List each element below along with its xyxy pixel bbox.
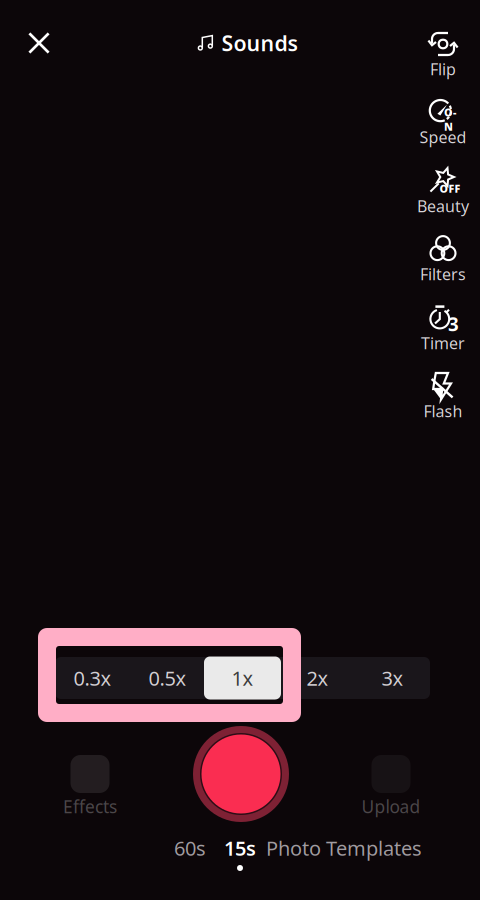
button[interactable]: 1x [205, 656, 280, 699]
button[interactable]: Flip [411, 29, 475, 77]
staticText: OFF [439, 181, 460, 196]
staticText: 3x [381, 665, 403, 691]
button[interactable]: ON [411, 97, 475, 145]
button[interactable]: Record [193, 726, 289, 822]
button[interactable]: 15s [214, 834, 266, 862]
staticText: Timer [421, 332, 465, 354]
staticText: Photo Templates [266, 835, 422, 861]
button[interactable]: Photo Templates [266, 834, 464, 862]
button[interactable]: Effects [48, 755, 132, 815]
staticText: Sounds [221, 29, 298, 57]
button[interactable]: 3x [355, 656, 430, 699]
button[interactable]: OFF [411, 166, 475, 214]
staticText: 1x [231, 665, 253, 691]
button[interactable]: 0.3x [55, 656, 130, 699]
button[interactable]: Close [16, 20, 62, 66]
button[interactable]: 3 [411, 303, 475, 351]
button[interactable]: Flash [411, 371, 475, 419]
button[interactable]: Upload [349, 755, 433, 815]
staticText: 60s [174, 835, 206, 861]
staticText: Filters [420, 263, 466, 285]
staticText: 15s [224, 835, 256, 861]
staticText: 3 [448, 312, 459, 336]
button[interactable]: 0.5x [130, 656, 205, 699]
staticText: Speed [419, 126, 466, 148]
button[interactable]: Filters [411, 234, 475, 282]
staticText: Upload [361, 795, 420, 818]
staticText: Beauty [417, 195, 469, 217]
staticText: Effects [63, 795, 117, 818]
staticText: 0.3x [73, 665, 111, 691]
staticText: ON [444, 105, 456, 134]
staticText: 0.5x [148, 665, 186, 691]
staticText: Flash [423, 400, 462, 422]
staticText: Flip [430, 58, 456, 80]
staticText: 2x [306, 665, 328, 691]
button[interactable]: 60s [166, 834, 214, 862]
button[interactable]: Sounds [178, 20, 318, 66]
button[interactable]: 2x [280, 656, 355, 699]
